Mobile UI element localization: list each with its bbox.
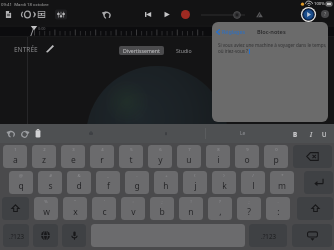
button[interactable]: 3 [61, 145, 85, 168]
staticText: I [310, 130, 313, 138]
button[interactable]: ' [92, 197, 116, 220]
staticText: y [158, 154, 163, 166]
button[interactable]: ? [208, 197, 232, 220]
button[interactable]: * [270, 171, 294, 194]
button[interactable]: Studio [176, 46, 192, 55]
button[interactable]: @ [9, 171, 33, 194]
button[interactable]: Réglages [214, 26, 248, 37]
button[interactable]: Play [162, 9, 172, 20]
button[interactable]: & [67, 171, 91, 194]
button[interactable]: My Songs [4, 10, 13, 19]
staticText: , [219, 206, 222, 218]
button[interactable]: .?123 [249, 224, 287, 247]
button[interactable]: _ [96, 171, 120, 194]
staticText: .?123 [261, 232, 276, 240]
staticText: 7 [188, 147, 191, 153]
staticText: ) [223, 173, 225, 179]
staticText: k [222, 180, 227, 192]
button[interactable]: Record [181, 10, 190, 19]
button[interactable]: Help [321, 10, 329, 18]
button[interactable]: .?123 [3, 224, 29, 247]
button[interactable]: - [125, 171, 149, 194]
staticText: j [194, 180, 197, 192]
button[interactable]: ) [212, 171, 236, 194]
button[interactable]: ; [237, 197, 261, 220]
staticText: 8 [217, 147, 220, 153]
staticText: + [165, 173, 168, 179]
staticText: m [278, 180, 286, 192]
button[interactable]: + [154, 171, 178, 194]
button[interactable]: Text style [236, 128, 249, 139]
staticText: h [163, 180, 169, 192]
button[interactable]: Draw [161, 128, 171, 139]
button[interactable]: ( [183, 171, 207, 194]
button[interactable]: Hide keyboard [292, 224, 332, 247]
button[interactable]: 0 [264, 145, 288, 168]
staticText: c [102, 206, 107, 218]
button[interactable]: B [291, 128, 300, 139]
button[interactable]: Dictate [62, 224, 86, 247]
staticText: l [252, 180, 255, 192]
button[interactable]: Return [304, 171, 333, 194]
button[interactable]: " [63, 197, 87, 220]
button[interactable]: Undo [101, 9, 112, 20]
staticText: Bloc-notes [257, 28, 286, 36]
staticText: 9 [246, 147, 249, 153]
button[interactable]: Undo [6, 128, 17, 139]
staticText: & [77, 173, 81, 179]
button[interactable]: Shift [2, 197, 29, 220]
button[interactable]: Settings [300, 6, 317, 23]
button[interactable]: Redo [19, 128, 30, 139]
staticText: 5 [130, 147, 133, 153]
button[interactable]: Metronome [254, 9, 265, 20]
button[interactable]: : [121, 197, 145, 220]
staticText: r [100, 154, 104, 166]
button[interactable]: U [320, 128, 329, 139]
button[interactable]: Shift [297, 197, 333, 220]
staticText: 4 [101, 147, 104, 153]
button[interactable]: Change language [33, 224, 58, 247]
staticText: e [71, 154, 76, 166]
button[interactable]: 5 [119, 145, 143, 168]
button[interactable]: % [34, 197, 58, 220]
staticText: Si vous aviez une machine à voyager dans… [218, 42, 326, 48]
button[interactable]: ! [179, 197, 203, 220]
button[interactable]: . [266, 197, 290, 220]
staticText: Divertissement [123, 47, 160, 54]
button[interactable]: Volume [199, 11, 247, 19]
button[interactable]: 8 [206, 145, 230, 168]
staticText: # [49, 173, 52, 179]
button[interactable]: Tracks [37, 10, 46, 19]
button[interactable]: Divertissement [123, 46, 160, 55]
button[interactable]: 9 [235, 145, 259, 168]
button[interactable]: Insert photo [86, 128, 96, 139]
button[interactable]: Paste [33, 128, 43, 139]
button[interactable]: / [241, 171, 265, 194]
staticText: z [42, 154, 46, 166]
staticText: 0 [275, 147, 278, 153]
staticText: v [131, 206, 136, 218]
staticText: " [74, 199, 76, 205]
staticText: @ [19, 173, 23, 179]
button[interactable]: 4 [90, 145, 114, 168]
staticText: s [48, 180, 53, 192]
staticText: 6 [159, 147, 162, 153]
button[interactable]: Mixer [54, 9, 68, 20]
button[interactable]: Loops [21, 10, 35, 19]
button[interactable]: 1 [3, 145, 27, 168]
button[interactable]: I [307, 128, 316, 139]
button[interactable]: Rewind [143, 9, 153, 20]
staticText: ? [219, 199, 221, 205]
button[interactable]: 7 [177, 145, 201, 168]
staticText: ? [324, 11, 327, 18]
button[interactable]: Backspace [293, 145, 332, 168]
button[interactable]: 6 [148, 145, 172, 168]
staticText: ENTRÉE [14, 45, 38, 54]
button[interactable]: # [38, 171, 62, 194]
staticText: B [293, 130, 298, 138]
button[interactable]: 2 [32, 145, 56, 168]
button[interactable]: ; [150, 197, 174, 220]
